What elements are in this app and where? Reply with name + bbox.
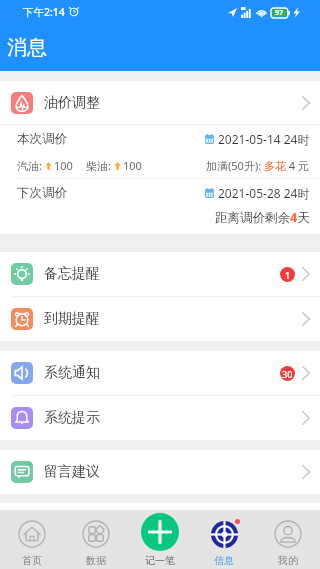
staticText: 首页 [22,554,42,567]
staticText: 备忘提醒 [44,265,100,283]
staticText: 留言建议 [44,463,100,481]
button[interactable]: 首页 [0,510,64,569]
staticText: 油价调整 [44,94,100,112]
staticText: 1 [285,269,291,281]
staticText: 30 [282,368,293,380]
staticText: 97 [275,8,284,18]
staticText: 信息 [214,554,234,567]
staticText: 2021-05-28 24时 [218,185,310,201]
button[interactable]: 油价调整 [0,81,320,124]
staticText: 数据 [86,554,106,567]
button[interactable]: 留言建议 [0,450,320,494]
staticText: 100 [54,158,73,173]
button[interactable]: 系统通知 [0,351,320,395]
staticText: 消息 [7,35,47,60]
staticText: 柴油: [86,158,114,173]
staticText: 2021-05-14 24时 [218,131,310,147]
button[interactable]: 我的 [256,510,320,569]
staticText: 记一笔 [145,554,175,567]
staticText: 系统提示 [44,409,100,427]
staticText: 下午2:14 [23,5,65,19]
button[interactable]: 信息 [192,510,256,569]
staticText: 距离调价剩余4天 [215,209,310,226]
button[interactable]: 记一笔 [128,510,192,569]
staticText: 我的 [278,554,298,567]
staticText: 加满(50升): 多花 4 元 [206,158,310,173]
button[interactable]: 数据 [64,510,128,569]
staticText: 汽油: [17,158,45,173]
staticText: 系统通知 [44,364,100,382]
staticText: 下次调价 [17,185,67,201]
button[interactable]: 系统提示 [0,396,320,440]
staticText: 本次调价 [17,131,67,147]
staticText: 到期提醒 [44,310,100,328]
button[interactable]: 到期提醒 [0,297,320,341]
button[interactable]: 备忘提醒 [0,252,320,296]
staticText: 100 [123,158,142,173]
